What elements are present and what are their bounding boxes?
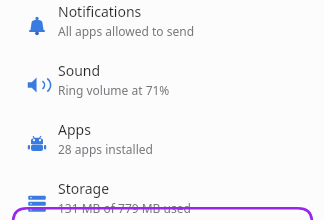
- other: Apps: [27, 134, 47, 154]
- other: Sound: [26, 74, 48, 96]
- staticText: All apps allowed to send: [58, 23, 195, 39]
- staticText: Sound: [58, 61, 101, 80]
- staticText: 131 MB of 779 MB used: [58, 200, 191, 216]
- staticText: Ring volume at 71%: [58, 82, 170, 98]
- other: Notifications: [26, 15, 48, 37]
- button[interactable]: Storage: [0, 159, 324, 218]
- other: Storage: [27, 193, 47, 213]
- button[interactable]: Notifications: [0, 0, 324, 41]
- staticText: 28 apps installed: [58, 141, 153, 157]
- button[interactable]: Sound: [0, 41, 324, 100]
- button[interactable]: Apps: [0, 100, 324, 159]
- staticText: Notifications: [58, 2, 142, 21]
- staticText: Storage: [58, 179, 110, 198]
- staticText: Apps: [58, 120, 91, 139]
